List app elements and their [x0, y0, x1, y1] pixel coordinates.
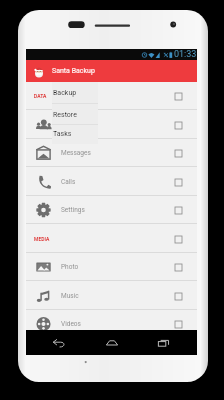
button[interactable]: Back	[40, 330, 78, 355]
staticText: Calls	[61, 178, 76, 186]
staticText: Videos	[61, 320, 81, 328]
button[interactable]: Recent apps	[145, 330, 183, 355]
staticText: Restore	[53, 111, 77, 119]
button[interactable]: Messages	[26, 139, 197, 167]
button[interactable]: Calls	[26, 168, 197, 196]
button[interactable]: MEDIA	[26, 225, 197, 253]
button[interactable]: Photo	[26, 253, 197, 281]
staticText: Music	[61, 292, 79, 300]
staticText: Photo	[61, 263, 79, 271]
button[interactable]: Contacts	[26, 111, 197, 139]
staticText: DATA	[34, 93, 47, 99]
staticText: Messages	[61, 149, 91, 157]
staticText: 01:33	[174, 49, 197, 60]
button[interactable]: DATA	[26, 82, 197, 110]
button[interactable]: Home	[93, 330, 131, 355]
staticText: Contacts	[61, 121, 88, 129]
staticText: MEDIA	[34, 236, 50, 242]
button[interactable]: Restore	[52, 104, 98, 125]
button[interactable]: Music	[26, 282, 197, 310]
button[interactable]: Backup	[52, 82, 98, 104]
button[interactable]: Videos	[26, 310, 197, 338]
staticText: Santa Backup	[52, 67, 95, 75]
button[interactable]: Settings	[26, 196, 197, 224]
staticText: Settings	[61, 206, 85, 214]
staticText: Tasks	[53, 130, 72, 138]
button[interactable]: Tasks	[52, 125, 98, 143]
staticText: Backup	[53, 89, 77, 97]
